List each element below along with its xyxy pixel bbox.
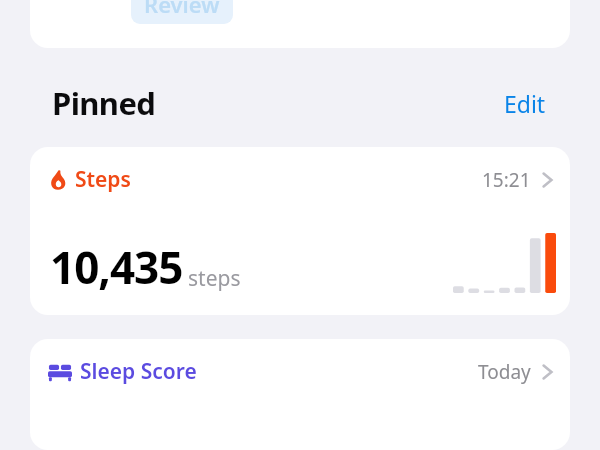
staticText: Sleep Score xyxy=(80,357,197,386)
staticText: Pinned xyxy=(52,82,156,124)
button[interactable]: Review xyxy=(30,0,570,48)
button[interactable]: Sleep xyxy=(30,339,570,450)
staticText: 15:21 xyxy=(482,167,531,193)
other: Steps activity xyxy=(48,170,68,190)
staticText: Review xyxy=(144,0,220,19)
button[interactable]: Steps activity xyxy=(30,147,570,315)
staticText: Edit xyxy=(504,88,546,119)
staticText: 10,435 xyxy=(50,237,183,297)
staticText: Steps xyxy=(75,165,131,194)
staticText: Today xyxy=(478,359,531,385)
staticText: steps xyxy=(188,264,241,293)
button[interactable]: Edit xyxy=(500,86,550,121)
other: Sleep xyxy=(48,362,72,382)
